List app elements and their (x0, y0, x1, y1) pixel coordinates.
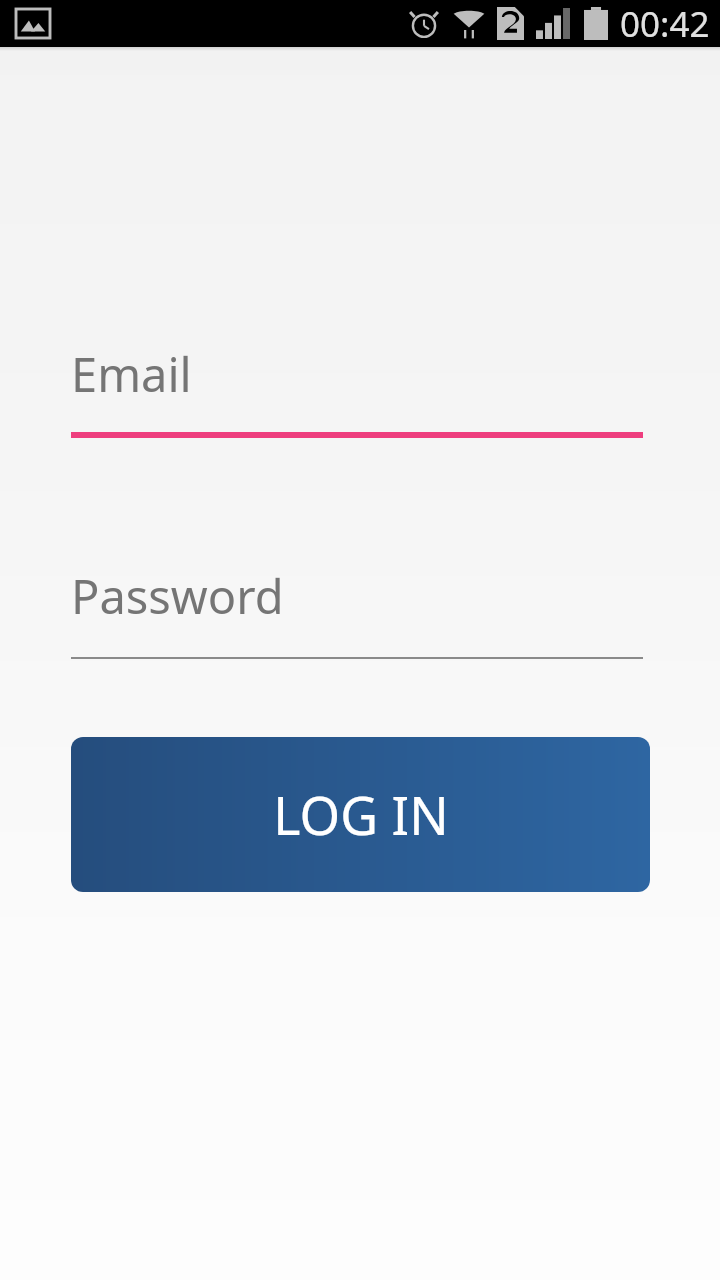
button[interactable]: LOG IN (71, 737, 650, 892)
button[interactable]: Email (71, 330, 643, 438)
staticText: LOG IN (273, 779, 449, 850)
staticText: Email (71, 342, 192, 406)
staticText: Password (71, 564, 284, 628)
button[interactable]: Password (71, 552, 643, 659)
staticText: 00:42 (620, 0, 710, 47)
